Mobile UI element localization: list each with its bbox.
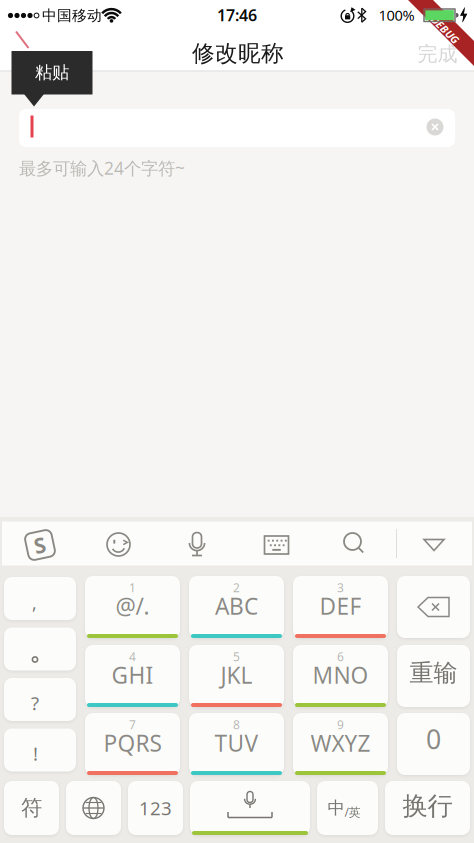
staticText: 2 (233, 579, 240, 595)
button[interactable] (98, 524, 138, 564)
button[interactable]: 重输 (397, 645, 470, 707)
button[interactable]: 中 (317, 781, 378, 835)
button[interactable]: 换行 (385, 781, 470, 835)
staticText: 6 (337, 648, 344, 664)
staticText: 符 (21, 795, 42, 821)
staticText: 中国移动 (42, 6, 102, 24)
staticText: GHI (111, 660, 153, 690)
staticText: 4 (129, 648, 136, 664)
staticText: TUV (214, 728, 258, 758)
button[interactable] (334, 524, 374, 564)
button[interactable]: 6 (293, 645, 388, 707)
staticText: ! (33, 741, 38, 766)
staticText: 123 (139, 796, 172, 820)
button[interactable] (177, 524, 217, 564)
button[interactable]: 粘贴 (11, 51, 92, 106)
staticText: JKL (220, 660, 252, 690)
staticText: 7 (129, 716, 136, 732)
button[interactable]: 123 (128, 781, 183, 835)
button[interactable] (4, 627, 76, 670)
button[interactable]: 3 (293, 576, 388, 638)
button[interactable]: ! (4, 728, 76, 771)
button[interactable] (19, 109, 455, 147)
staticText: 完成 (417, 42, 457, 66)
staticText: MNO (312, 660, 368, 690)
button[interactable] (190, 781, 310, 835)
button[interactable] (397, 576, 470, 638)
staticText: 最多可输入24个字符~ (19, 156, 185, 179)
staticText: 5 (233, 648, 240, 664)
staticText: 修改昵称 (192, 40, 284, 67)
staticText: 8 (233, 716, 240, 732)
button[interactable]: 0 (397, 713, 470, 775)
staticText: /英 (344, 804, 360, 820)
staticText: 3 (337, 579, 344, 595)
button[interactable]: S (23, 528, 57, 562)
staticText: 0 (426, 721, 441, 757)
button[interactable] (412, 524, 456, 564)
button[interactable]: 符 (4, 781, 59, 835)
staticText: 100% (378, 5, 414, 25)
staticText: 中 (327, 797, 344, 819)
button[interactable]: 2 (189, 576, 284, 638)
button[interactable]: 5 (189, 645, 284, 707)
staticText: 9 (337, 716, 344, 732)
button[interactable]: 8 (189, 713, 284, 775)
staticText: WXYZ (310, 728, 370, 758)
staticText: , (32, 591, 37, 614)
staticText: S (34, 531, 46, 559)
staticText: 重输 (409, 658, 457, 688)
button[interactable]: 1 (85, 576, 180, 638)
button[interactable]: 9 (293, 713, 388, 775)
staticText: PQRS (103, 728, 161, 758)
button[interactable] (256, 524, 296, 564)
button[interactable]: 完成 (407, 37, 467, 71)
staticText: 17:46 (217, 4, 257, 26)
staticText: @/. (115, 591, 149, 621)
button[interactable]: 7 (85, 713, 180, 775)
staticText: ? (31, 691, 39, 715)
staticText: DEBUG (428, 22, 462, 37)
staticText: ABC (215, 591, 258, 621)
staticText: 粘贴 (35, 62, 69, 83)
button[interactable]: 4 (85, 645, 180, 707)
button[interactable] (425, 117, 445, 137)
button[interactable] (66, 781, 121, 835)
button[interactable]: , (4, 577, 76, 620)
staticText: 1 (129, 579, 136, 595)
button[interactable]: ? (4, 678, 76, 721)
staticText: DEF (319, 591, 361, 621)
staticText: 换行 (402, 790, 452, 821)
